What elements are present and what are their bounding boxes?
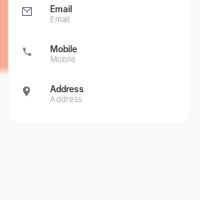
staticText: Mobile bbox=[50, 54, 76, 64]
button[interactable]: Email bbox=[9, 0, 190, 34]
button[interactable]: Mobile bbox=[9, 34, 190, 74]
staticText: Email bbox=[50, 4, 72, 14]
staticText: Email bbox=[50, 14, 70, 24]
staticText: Address bbox=[50, 94, 82, 104]
staticText: Mobile bbox=[50, 44, 77, 54]
staticText: Address bbox=[50, 84, 84, 94]
button[interactable]: Address bbox=[9, 74, 190, 114]
